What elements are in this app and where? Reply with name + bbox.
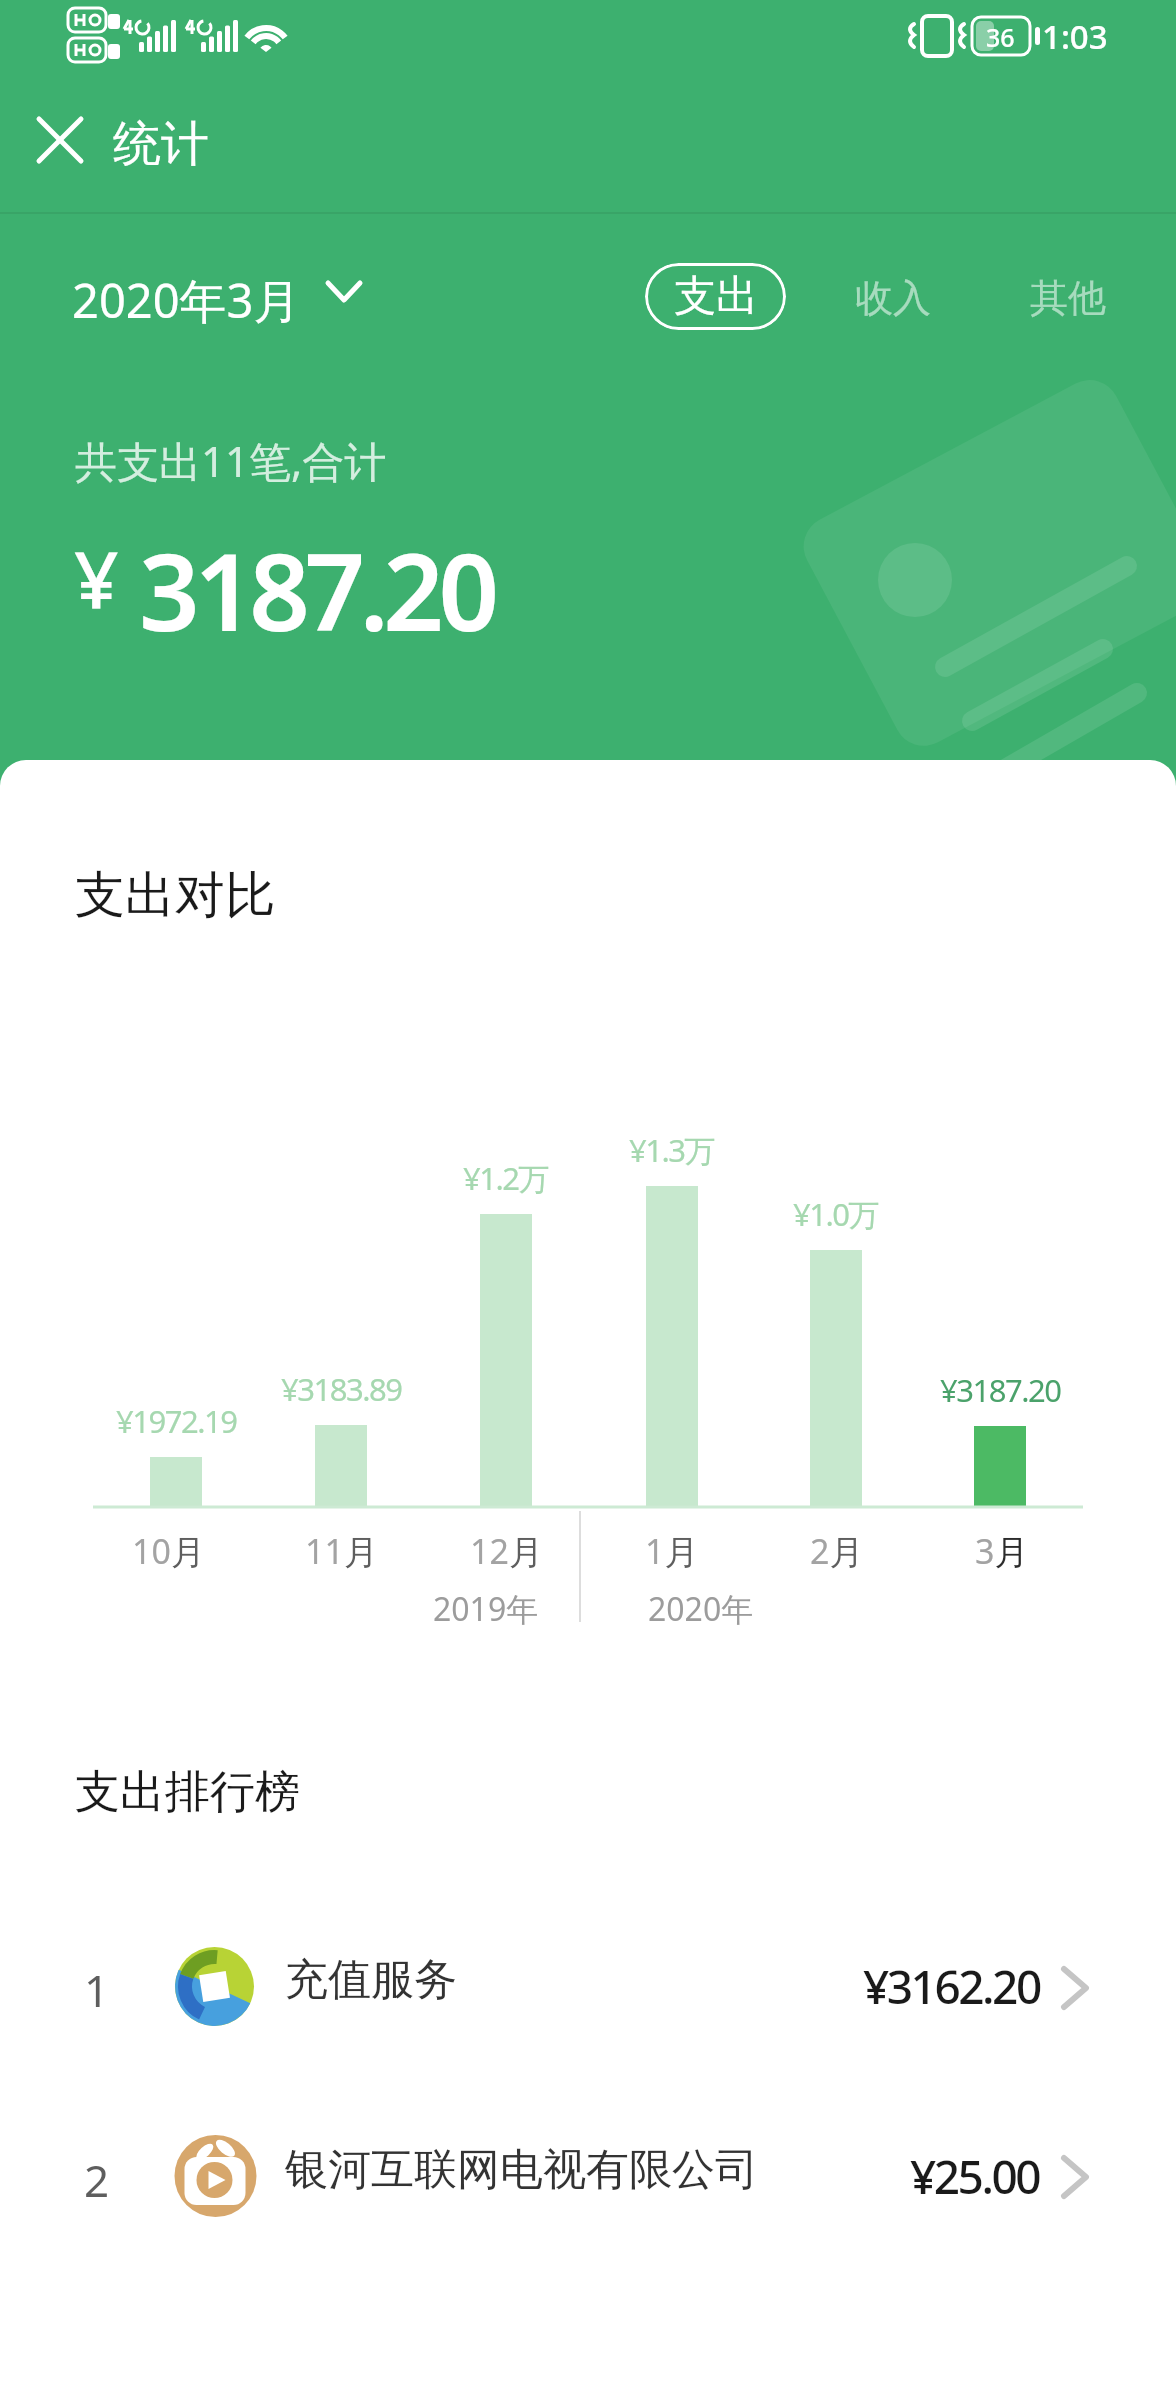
- staticText: ¥: [74, 526, 119, 632]
- staticText: ¥1.2万: [463, 1157, 549, 1199]
- button[interactable]: [0, 1900, 1176, 2076]
- staticText: ¥3187.20: [940, 1369, 1061, 1411]
- staticText: ¥3162.20: [863, 1955, 1040, 2018]
- button[interactable]: [20, 100, 100, 180]
- staticText: 支出: [674, 270, 758, 323]
- button[interactable]: [1020, 262, 1115, 324]
- button[interactable]: [69, 262, 369, 324]
- staticText: 10月: [132, 1528, 205, 1574]
- staticText: 2: [84, 2150, 110, 2210]
- staticText: 统计: [113, 114, 209, 174]
- staticText: 11月: [305, 1528, 378, 1574]
- staticText: ¥25.00: [910, 2145, 1040, 2208]
- staticText: 1: [84, 1960, 110, 2020]
- staticText: ¥1.0万: [793, 1193, 879, 1235]
- button[interactable]: 支出: [645, 263, 786, 330]
- button[interactable]: [0, 2090, 1176, 2266]
- staticText: 2020年3月: [72, 268, 301, 332]
- staticText: 2020年: [648, 1587, 754, 1631]
- staticText: 银河互联网电视有限公司: [285, 2143, 758, 2197]
- staticText: 共支出11笔,合计: [75, 432, 387, 489]
- staticText: 其他: [1030, 274, 1106, 322]
- button[interactable]: [845, 262, 940, 324]
- staticText: 支出对比: [75, 864, 275, 927]
- staticText: ¥1972.19: [116, 1400, 237, 1442]
- staticText: 1月: [645, 1528, 699, 1574]
- staticText: 支出排行榜: [75, 1764, 300, 1821]
- staticText: 收入: [855, 274, 931, 322]
- staticText: 36: [986, 20, 1015, 54]
- staticText: 1:03: [1042, 14, 1108, 59]
- staticText: ¥1.3万: [629, 1129, 715, 1171]
- staticText: 3187.20: [139, 518, 494, 662]
- staticText: 2月: [810, 1528, 864, 1574]
- staticText: 2019年: [433, 1587, 539, 1631]
- staticText: 充值服务: [285, 1953, 457, 2007]
- staticText: 12月: [470, 1528, 543, 1574]
- staticText: ¥3183.89: [281, 1368, 402, 1410]
- staticText: 3月: [975, 1528, 1029, 1574]
